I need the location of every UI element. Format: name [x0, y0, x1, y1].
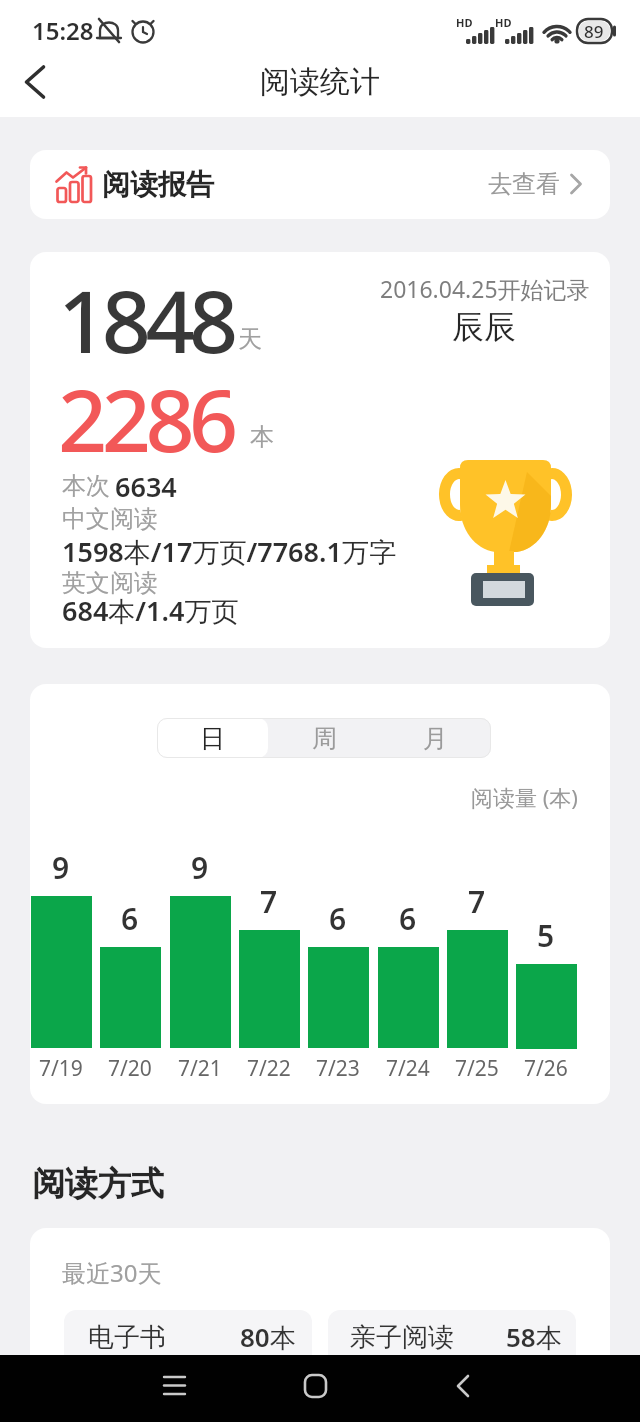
- staticText: 去查看: [488, 169, 560, 199]
- staticText: 英文阅读: [62, 568, 158, 598]
- button[interactable]: [286, 1360, 346, 1412]
- staticText: 中文阅读: [62, 504, 158, 534]
- button[interactable]: [157, 718, 268, 758]
- staticText: 6: [329, 898, 347, 939]
- button[interactable]: [10, 62, 58, 106]
- button[interactable]: [380, 718, 491, 758]
- staticText: 1598本/17万页/7768.1万字: [62, 533, 396, 570]
- staticText: 7/26: [524, 1054, 568, 1083]
- staticText: 本次: [62, 471, 110, 501]
- staticText: 7/20: [108, 1054, 152, 1083]
- staticText: 1848: [58, 261, 233, 378]
- staticText: 684本/1.4万页: [62, 592, 239, 629]
- staticText: 80本: [240, 1319, 296, 1355]
- staticText: 7: [468, 881, 486, 922]
- button[interactable]: [30, 150, 610, 219]
- staticText: 5: [537, 915, 555, 956]
- staticText: 阅读统计: [260, 63, 380, 101]
- staticText: 7/22: [247, 1054, 291, 1083]
- staticText: 辰辰: [452, 307, 516, 347]
- staticText: HD: [495, 15, 512, 30]
- staticText: 日: [200, 723, 225, 754]
- staticText: 阅读报告: [102, 167, 214, 202]
- staticText: 7/25: [455, 1054, 499, 1083]
- staticText: 7/24: [386, 1054, 430, 1083]
- staticText: 7/21: [178, 1054, 222, 1083]
- button[interactable]: [268, 718, 380, 758]
- staticText: 7/23: [316, 1054, 360, 1083]
- staticText: 月: [423, 723, 448, 754]
- button[interactable]: [328, 1310, 576, 1394]
- staticText: 最近30天: [62, 1256, 162, 1289]
- staticText: 6: [399, 898, 417, 939]
- staticText: 7/19: [39, 1054, 83, 1083]
- staticText: 6: [121, 898, 139, 939]
- staticText: 周: [312, 723, 337, 754]
- staticText: 2016.04.25开始记录: [380, 273, 590, 304]
- staticText: 58本: [506, 1319, 562, 1355]
- staticText: 电子书: [88, 1321, 166, 1354]
- button[interactable]: [145, 1360, 205, 1412]
- staticText: 阅读方式: [32, 1163, 164, 1205]
- staticText: 89: [584, 20, 604, 43]
- staticText: 天: [238, 324, 262, 354]
- staticText: 2286: [58, 360, 233, 477]
- button[interactable]: [433, 1360, 493, 1412]
- staticText: 亲子阅读: [350, 1321, 454, 1354]
- staticText: 阅读量 (本): [471, 782, 578, 812]
- staticText: 7: [260, 881, 278, 922]
- staticText: 15:28: [32, 14, 94, 47]
- staticText: HD: [456, 15, 473, 30]
- staticText: 本: [250, 422, 274, 452]
- staticText: 9: [52, 847, 70, 888]
- button[interactable]: [64, 1310, 312, 1394]
- staticText: 6634: [115, 468, 177, 505]
- staticText: 9: [191, 847, 209, 888]
